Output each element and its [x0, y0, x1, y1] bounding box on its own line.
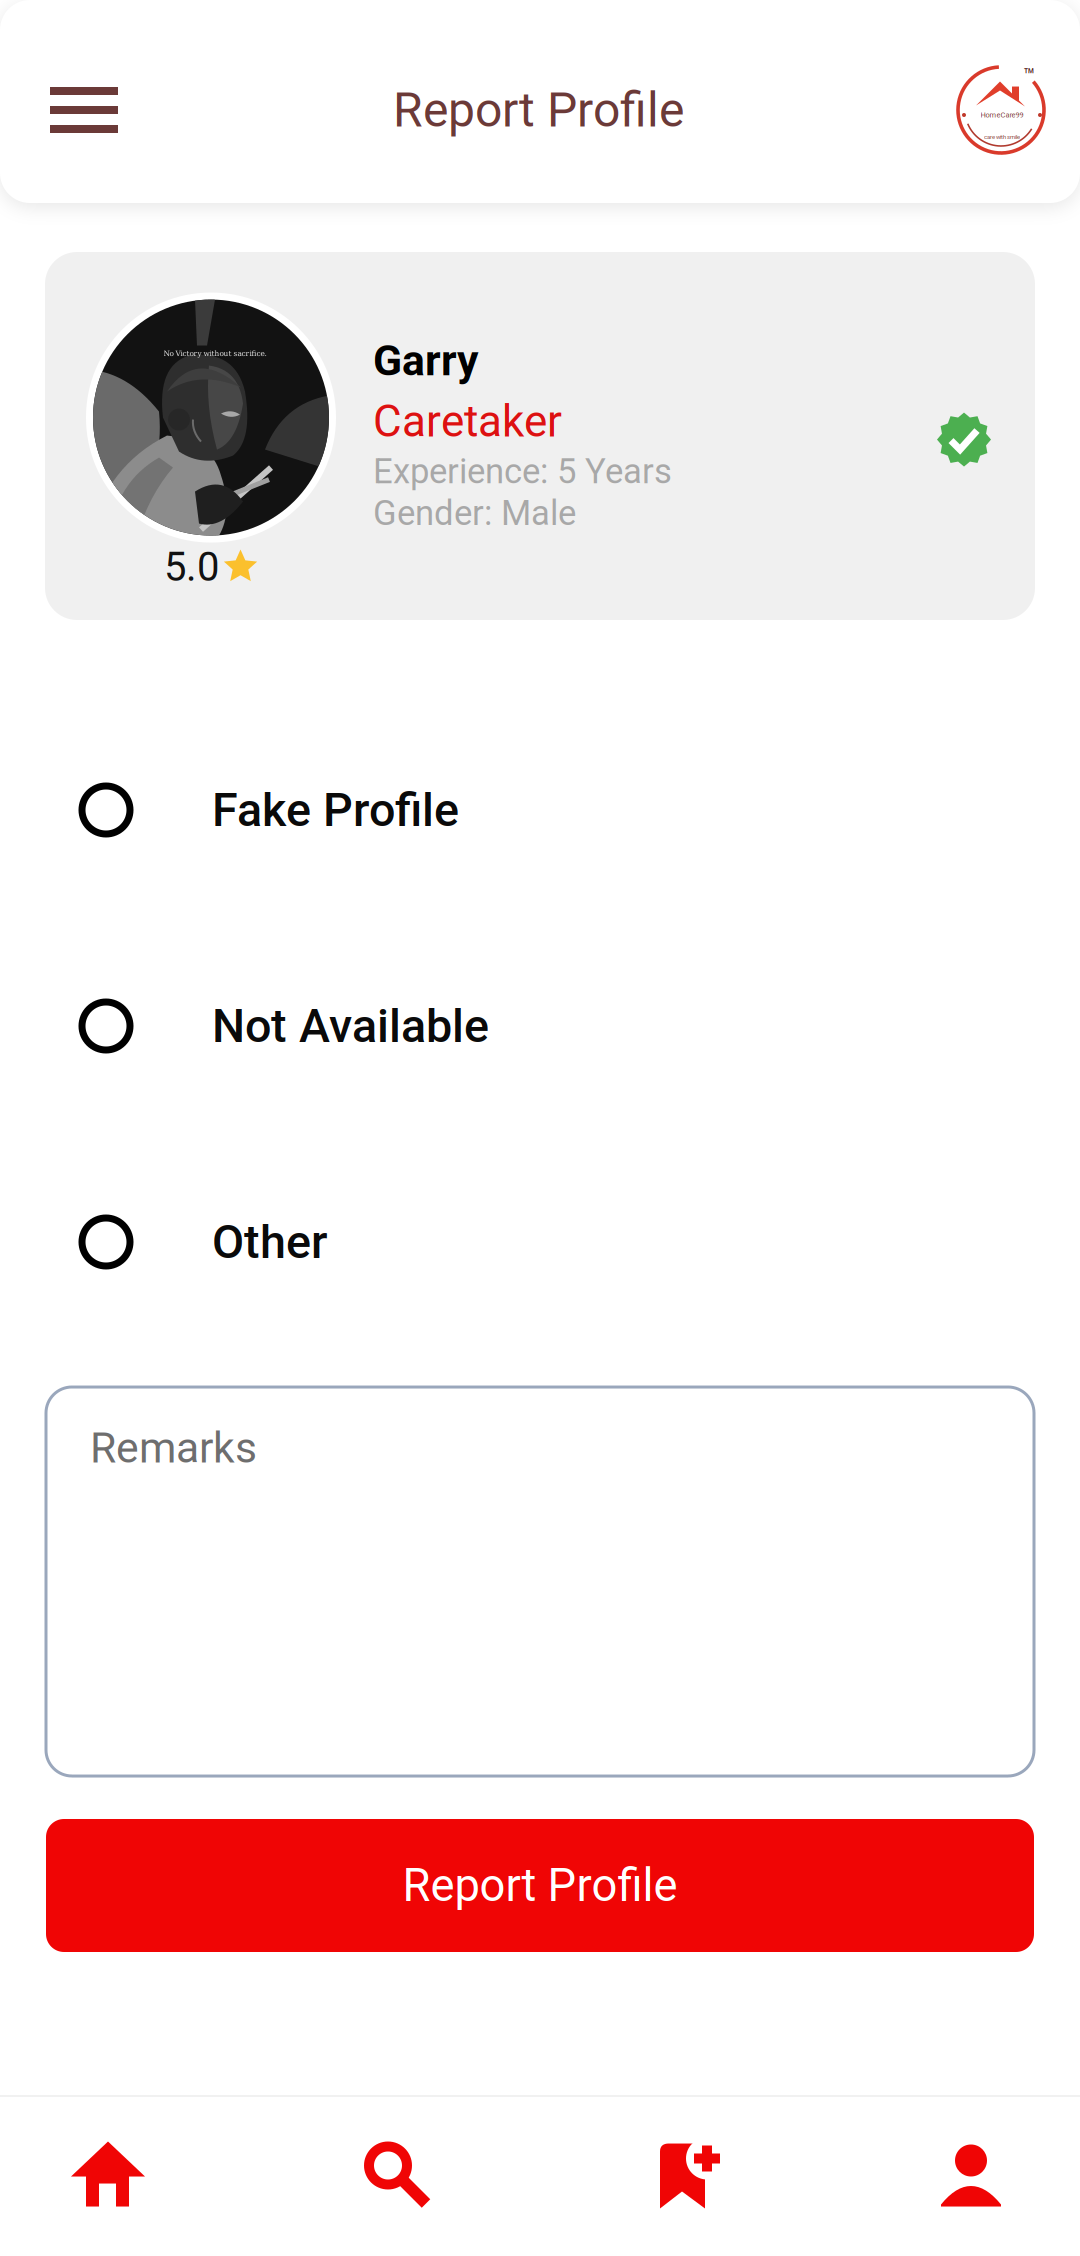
- button[interactable]: Report Profile: [46, 1819, 1034, 1952]
- button[interactable]: Fake Profile: [0, 702, 1080, 918]
- button[interactable]: Search: [270, 2140, 540, 2210]
- button[interactable]: Profile: [810, 2140, 1080, 2210]
- button[interactable]: Saved: [540, 2140, 810, 2210]
- button[interactable]: Home: [0, 2140, 270, 2210]
- staticText: Fake Profile: [212, 783, 459, 837]
- staticText: care with smile: [984, 134, 1020, 140]
- staticText: Other: [212, 1215, 327, 1269]
- button[interactable]: HomeCare99 home: [942, 20, 1060, 200]
- staticText: Remarks: [90, 1423, 257, 1473]
- staticText: Not Available: [212, 999, 489, 1053]
- staticText: Caretaker: [373, 396, 562, 447]
- button[interactable]: Other: [0, 1134, 1080, 1350]
- button[interactable]: Not Available: [0, 918, 1080, 1134]
- staticText: Garry: [373, 336, 478, 386]
- staticText: Experience: 5 Years: [373, 451, 672, 492]
- staticText: 5.0: [164, 544, 219, 590]
- staticText: Report Profile: [393, 82, 684, 138]
- staticText: No Victory without sacrifice.: [163, 349, 266, 358]
- staticText: Gender: Male: [373, 493, 576, 533]
- button[interactable]: Menu: [25, 20, 143, 200]
- staticText: TM: [1024, 67, 1034, 75]
- staticText: Report Profile: [402, 1859, 677, 1912]
- staticText: HomeCare99: [980, 111, 1023, 119]
